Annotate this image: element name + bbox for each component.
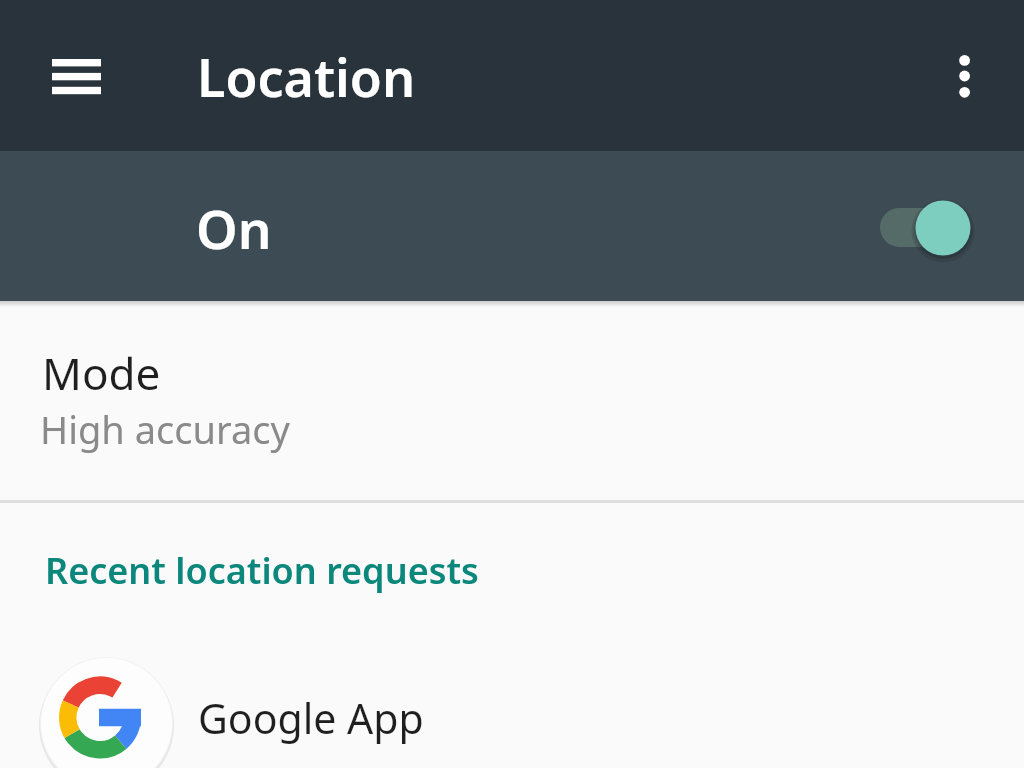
staticText: Recent location requests <box>45 546 479 595</box>
staticText: Mode <box>42 343 161 403</box>
button[interactable]: Google App <box>0 640 1024 768</box>
staticText: On <box>196 192 272 264</box>
staticText: High accuracy <box>40 403 290 455</box>
button[interactable]: Mode <box>0 320 1024 480</box>
button[interactable]: On <box>0 151 1024 301</box>
staticText: Google App <box>198 690 424 746</box>
button[interactable] <box>938 40 994 112</box>
button[interactable] <box>38 46 114 108</box>
staticText: Location <box>197 41 416 112</box>
